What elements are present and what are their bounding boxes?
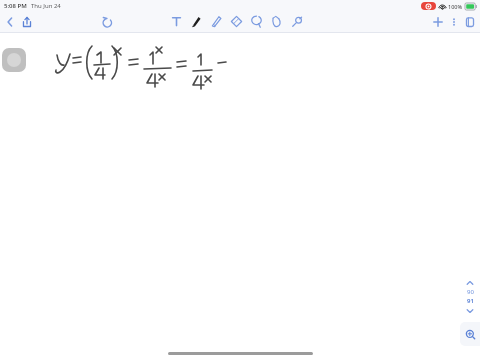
staticText: 100% — [448, 3, 463, 10]
button[interactable]: Share — [19, 14, 35, 30]
button[interactable]: Text tool — [168, 13, 185, 30]
button[interactable]: Highlighter — [288, 13, 305, 30]
button[interactable]: Add page — [430, 14, 446, 30]
staticText: Thu Jun 24 — [31, 2, 61, 10]
button[interactable]: Pencil tool — [208, 13, 225, 30]
button[interactable]: Page view — [462, 14, 478, 30]
button[interactable]: Previous page — [462, 278, 478, 288]
button[interactable]: Pen tool — [188, 13, 205, 30]
button[interactable]: More options — [447, 15, 461, 29]
button[interactable]: Lasso select — [248, 13, 265, 30]
button[interactable]: Undo — [99, 14, 115, 30]
button[interactable]: Next page — [462, 305, 478, 317]
button[interactable]: Current pen colour — [2, 48, 26, 72]
staticText: 5:08 PM — [4, 2, 27, 10]
button[interactable]: 90 — [467, 288, 474, 296]
button[interactable]: Zoom — [460, 322, 480, 346]
button[interactable]: Back — [2, 14, 18, 30]
button[interactable]: 91 — [467, 297, 474, 305]
button[interactable]: Shapes — [268, 13, 285, 30]
button[interactable]: Eraser — [228, 13, 245, 30]
